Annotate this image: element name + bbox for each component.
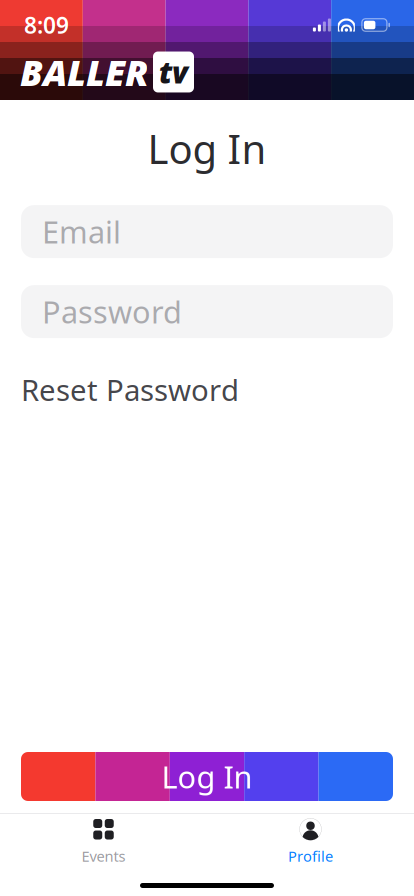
staticText: Events: [81, 846, 125, 866]
button[interactable]: Profile: [207, 810, 414, 866]
button[interactable]: Reset Password: [21, 364, 239, 415]
staticText: Password: [42, 291, 182, 332]
staticText: Email: [42, 211, 121, 252]
button[interactable]: Events: [0, 810, 207, 866]
button[interactable]: Log In: [0, 752, 414, 801]
staticText: BALLER: [20, 48, 148, 96]
staticText: Log In: [147, 122, 266, 175]
staticText: Log In: [161, 756, 252, 797]
staticText: Profile: [288, 846, 333, 866]
staticText: tv: [159, 52, 188, 91]
staticText: 8:09: [24, 10, 69, 40]
staticText: Reset Password: [21, 370, 239, 409]
